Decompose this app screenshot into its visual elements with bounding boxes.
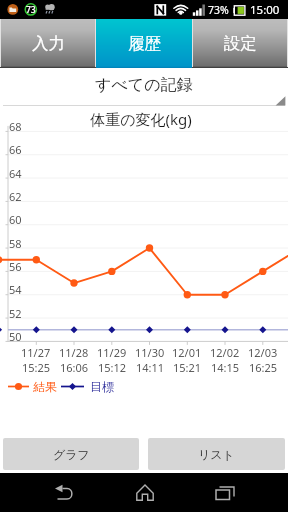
- staticText: 60: [9, 212, 22, 227]
- staticText: 入力: [32, 33, 65, 54]
- button[interactable]: リスト: [148, 438, 285, 470]
- staticText: 11/28: [59, 345, 89, 360]
- staticText: 62: [9, 189, 22, 204]
- button[interactable]: 履歴: [96, 19, 192, 68]
- staticText: 体重の変化(kg): [0, 109, 285, 129]
- staticText: 14:15: [211, 360, 240, 375]
- staticText: 設定: [224, 33, 257, 54]
- staticText: 12/03: [248, 345, 278, 360]
- staticText: グラフ: [53, 447, 90, 462]
- staticText: 12/02: [210, 345, 240, 360]
- staticText: 52: [9, 306, 22, 321]
- staticText: 11/27: [21, 345, 51, 360]
- button[interactable]: Recent apps: [201, 473, 249, 512]
- staticText: 64: [9, 166, 22, 181]
- staticText: 15:21: [173, 360, 202, 375]
- button[interactable]: グラフ: [3, 438, 139, 470]
- staticText: 15:12: [98, 360, 127, 375]
- staticText: 56: [9, 259, 22, 274]
- staticText: 58: [9, 236, 22, 251]
- button[interactable]: Home: [121, 473, 169, 512]
- staticText: 結果: [33, 379, 57, 394]
- staticText: 16:25: [249, 360, 278, 375]
- staticText: 73: [26, 4, 36, 16]
- button[interactable]: 入力: [0, 19, 96, 68]
- staticText: 11/30: [135, 345, 165, 360]
- button[interactable]: 設定: [192, 19, 288, 68]
- staticText: 14:11: [136, 360, 165, 375]
- staticText: 68: [9, 119, 22, 134]
- staticText: 54: [9, 282, 22, 297]
- staticText: 15:25: [22, 360, 51, 375]
- staticText: 66: [9, 142, 22, 157]
- button[interactable]: Back: [41, 473, 89, 512]
- staticText: すべての記録: [95, 75, 193, 95]
- staticText: 11/29: [97, 345, 127, 360]
- staticText: リスト: [198, 447, 235, 462]
- staticText: 50: [9, 329, 22, 344]
- staticText: 16:06: [60, 360, 89, 375]
- staticText: 12/01: [172, 345, 202, 360]
- staticText: 目標: [90, 379, 114, 394]
- staticText: 15:00: [250, 2, 280, 18]
- staticText: 73%: [208, 3, 229, 17]
- staticText: 履歴: [128, 33, 161, 54]
- button[interactable]: すべての記録: [0, 68, 288, 106]
